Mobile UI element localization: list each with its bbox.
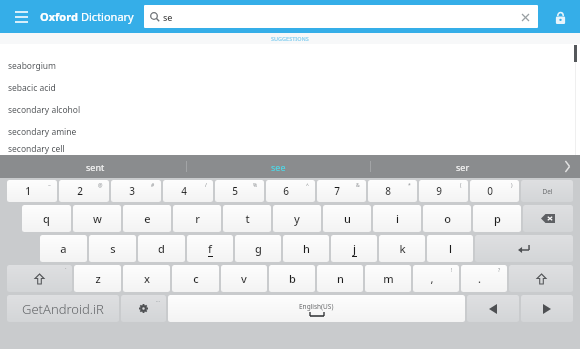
staticText: ( [460, 182, 462, 189]
button[interactable]: seaborgium [0, 55, 580, 77]
button[interactable]: h [283, 235, 329, 262]
button[interactable]: Space [168, 295, 465, 322]
button[interactable]: secondary alcohol [0, 99, 580, 121]
staticText: b [289, 271, 296, 286]
button[interactable]: , [413, 265, 459, 292]
button[interactable]: m [365, 265, 411, 292]
staticText: x [144, 271, 150, 286]
button[interactable]: gear [121, 295, 166, 322]
button[interactable]: secondary cell [0, 143, 580, 155]
staticText: v [241, 271, 247, 286]
button[interactable]: Menu [8, 4, 34, 30]
staticText: k [399, 241, 406, 256]
staticText: c [193, 271, 199, 286]
button[interactable]: Lock [548, 5, 572, 29]
staticText: , [430, 271, 434, 286]
button[interactable]: sent [4, 155, 186, 178]
staticText: 8 [385, 184, 391, 198]
button[interactable]: 1 [7, 180, 57, 202]
staticText: e [144, 211, 151, 226]
button[interactable]: Enter [475, 235, 573, 262]
staticText: sebacic acid [8, 82, 56, 94]
button[interactable]: l [427, 235, 473, 262]
button[interactable]: e [123, 205, 171, 232]
staticText: t [245, 211, 250, 226]
staticText: 6 [283, 184, 289, 198]
button[interactable]: Backspace [523, 205, 573, 232]
staticText: o [444, 211, 451, 226]
button[interactable]: j [331, 235, 377, 262]
button[interactable]: 2 [59, 180, 109, 202]
staticText: d [158, 241, 165, 256]
staticText: h [303, 241, 310, 256]
button[interactable]: q [22, 205, 71, 232]
button[interactable]: k [379, 235, 425, 262]
staticText: j [353, 241, 356, 256]
staticText: 1 [25, 184, 31, 198]
button[interactable]: 8 [368, 180, 417, 202]
button[interactable]: 6 [266, 180, 315, 202]
button[interactable]: Symbols [7, 295, 119, 322]
button[interactable]: Clear [518, 10, 532, 24]
button[interactable]: see [187, 155, 370, 178]
button[interactable]: p [473, 205, 521, 232]
staticText: 4 [181, 184, 187, 198]
button[interactable]: c [172, 265, 219, 292]
button[interactable]: 3 [111, 180, 161, 202]
button[interactable]: secondary amine [0, 121, 580, 143]
button[interactable]: right [521, 295, 573, 322]
button[interactable]: . [461, 265, 507, 292]
button[interactable]: y [273, 205, 321, 232]
button[interactable]: w [73, 205, 121, 232]
staticText: y [294, 211, 300, 226]
staticText: 3 [129, 184, 135, 198]
button[interactable]: ser [371, 155, 554, 178]
staticText: g [255, 241, 262, 256]
button[interactable]: u [323, 205, 371, 232]
button[interactable]: 5 [215, 180, 264, 202]
button[interactable]: x [123, 265, 170, 292]
staticText: ! [451, 267, 453, 274]
button[interactable]: d [138, 235, 185, 262]
button[interactable]: i [373, 205, 421, 232]
button[interactable]: f [187, 235, 233, 262]
button[interactable]: o [423, 205, 471, 232]
staticText: English(US) [299, 302, 334, 311]
button[interactable]: 4 [163, 180, 213, 202]
staticText: ` [65, 267, 67, 274]
button[interactable]: b [269, 265, 315, 292]
staticText: SUGGESTIONS [271, 35, 309, 42]
button[interactable]: Del [521, 180, 573, 202]
staticText: * [408, 182, 411, 189]
staticText: GetAndroid.iR [22, 300, 104, 318]
button[interactable]: 9 [419, 180, 468, 202]
button[interactable]: r [173, 205, 221, 232]
staticText: z [95, 271, 101, 286]
staticText: secondary amine [8, 126, 77, 138]
staticText: f [208, 241, 212, 256]
button[interactable]: Shift [509, 265, 573, 292]
button[interactable]: Shift [7, 265, 72, 292]
staticText: se [163, 11, 173, 23]
staticText: u [344, 211, 351, 226]
button[interactable]: t [223, 205, 271, 232]
button[interactable]: sebacic acid [0, 77, 580, 99]
button[interactable]: 0 [470, 180, 519, 202]
staticText: secondary alcohol [8, 104, 81, 116]
staticText: i [396, 211, 399, 226]
button[interactable]: a [40, 235, 87, 262]
staticText: n [337, 271, 344, 286]
staticText: Del [542, 187, 553, 196]
button[interactable]: s [89, 235, 136, 262]
button[interactable]: 7 [317, 180, 366, 202]
staticText: p [494, 211, 501, 226]
button[interactable]: left [467, 295, 519, 322]
button[interactable]: g [235, 235, 281, 262]
button[interactable]: z [74, 265, 121, 292]
staticText: 2 [77, 184, 83, 198]
button[interactable]: v [221, 265, 267, 292]
staticText: ^ [306, 182, 309, 189]
button[interactable]: se [144, 5, 538, 28]
button[interactable]: n [317, 265, 363, 292]
button[interactable]: More suggestions [554, 155, 580, 178]
